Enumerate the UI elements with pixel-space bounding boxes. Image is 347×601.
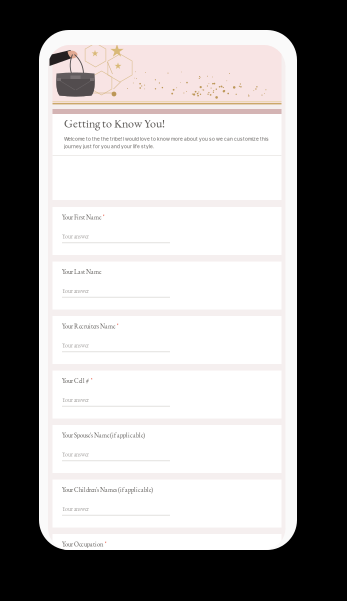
button[interactable]: Your Children's Names (if applicable) <box>52 479 281 527</box>
button[interactable]: Your First Name <box>52 207 281 255</box>
staticText: Your Occupation <box>62 540 103 548</box>
staticText: Your Children's Names (if applicable) <box>62 485 153 494</box>
staticText: Your answer <box>62 450 89 458</box>
staticText: Your Cell # <box>62 376 89 385</box>
staticText: Your answer <box>62 341 89 349</box>
staticText: Your answer <box>62 396 89 404</box>
staticText: Your First Name <box>62 213 101 221</box>
staticText: Your answer <box>62 287 89 295</box>
button[interactable]: Your Last Name <box>52 261 281 309</box>
staticText: Getting to Know You! <box>64 115 165 131</box>
staticText: * <box>90 376 92 384</box>
staticText: Welcome to the the tribe! I would love t… <box>64 136 269 142</box>
staticText: Your answer <box>62 505 89 513</box>
staticText: journey just for you and your life style… <box>64 144 154 149</box>
staticText: Your answer <box>62 232 89 240</box>
staticText: Your Spouse's Name (if applicable) <box>62 431 145 439</box>
staticText: Your Recruiters Name <box>62 322 115 330</box>
button[interactable]: Your Recruiters Name <box>52 316 281 364</box>
button[interactable]: Your Cell # <box>52 370 281 418</box>
staticText: Your Last Name <box>62 267 101 276</box>
staticText: * <box>116 322 118 330</box>
staticText: * <box>102 213 104 221</box>
staticText: * <box>104 540 106 548</box>
button[interactable]: Your Spouse's Name (if applicable) <box>52 425 281 473</box>
button[interactable]: Your Occupation <box>52 534 281 582</box>
